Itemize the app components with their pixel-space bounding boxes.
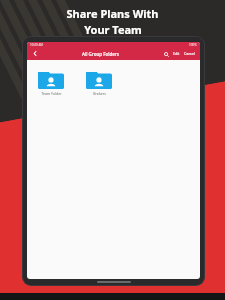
button[interactable]: Team Folder: [36, 70, 66, 96]
staticText: 10:30 AM: [30, 43, 44, 47]
staticText: Team Folder: [41, 91, 62, 96]
button[interactable]: Cancel: [183, 51, 196, 56]
staticText: Cancel: [184, 51, 195, 56]
staticText: All Group Folders: [82, 51, 119, 57]
staticText: Share Plans With: [66, 6, 159, 21]
button[interactable]: Edit: [172, 51, 181, 56]
button[interactable]: Brokers: [84, 70, 114, 96]
button[interactable]: Back: [31, 49, 40, 58]
staticText: Your Team: [84, 22, 142, 37]
staticText: Brokers: [93, 91, 106, 96]
staticText: 100%: [189, 43, 197, 47]
staticText: Edit: [173, 51, 180, 56]
button[interactable]: Search: [162, 50, 170, 58]
